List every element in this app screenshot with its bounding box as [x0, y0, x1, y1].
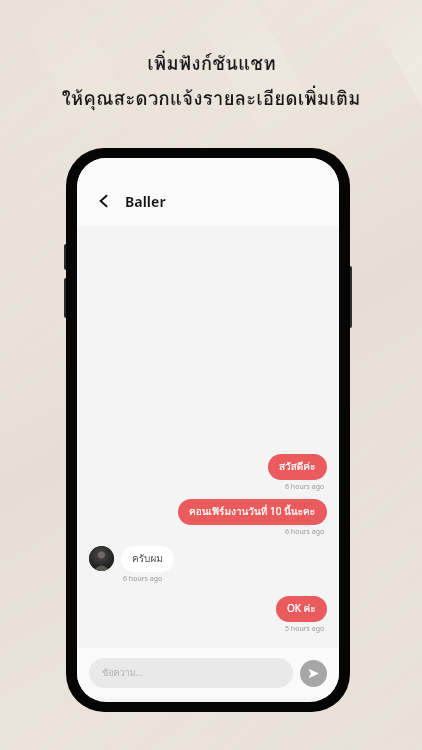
staticText: Baller [125, 192, 166, 211]
button[interactable]: Send [300, 660, 327, 687]
button[interactable] [89, 546, 114, 571]
staticText: 6 hours ago [285, 527, 325, 537]
button[interactable]: ข้อความ... [89, 658, 293, 688]
button[interactable]: ครับผม [121, 546, 174, 572]
staticText: 6 hours ago [285, 482, 325, 492]
staticText: คอนเฟิร์มงานวันที่ 10 นี้นะคะ [189, 504, 316, 520]
staticText: 5 hours ago [285, 624, 325, 634]
staticText: เพิ่มฟังก์ชันแชท [147, 48, 276, 78]
staticText: OK ค่ะ [287, 601, 316, 617]
staticText: ให้คุณสะดวกแจ้งรายละเอียดเพิ่มเติม [61, 83, 361, 113]
staticText: สวัสดีค่ะ [279, 459, 316, 475]
button[interactable]: OK ค่ะ [276, 596, 327, 622]
staticText: ครับผม [132, 551, 163, 567]
button[interactable]: คอนเฟิร์มงานวันที่ 10 นี้นะคะ [178, 499, 327, 525]
button[interactable]: สวัสดีค่ะ [268, 454, 327, 480]
button[interactable]: Back [91, 188, 117, 214]
staticText: 6 hours ago [123, 574, 163, 584]
staticText: ข้อความ... [102, 666, 143, 680]
